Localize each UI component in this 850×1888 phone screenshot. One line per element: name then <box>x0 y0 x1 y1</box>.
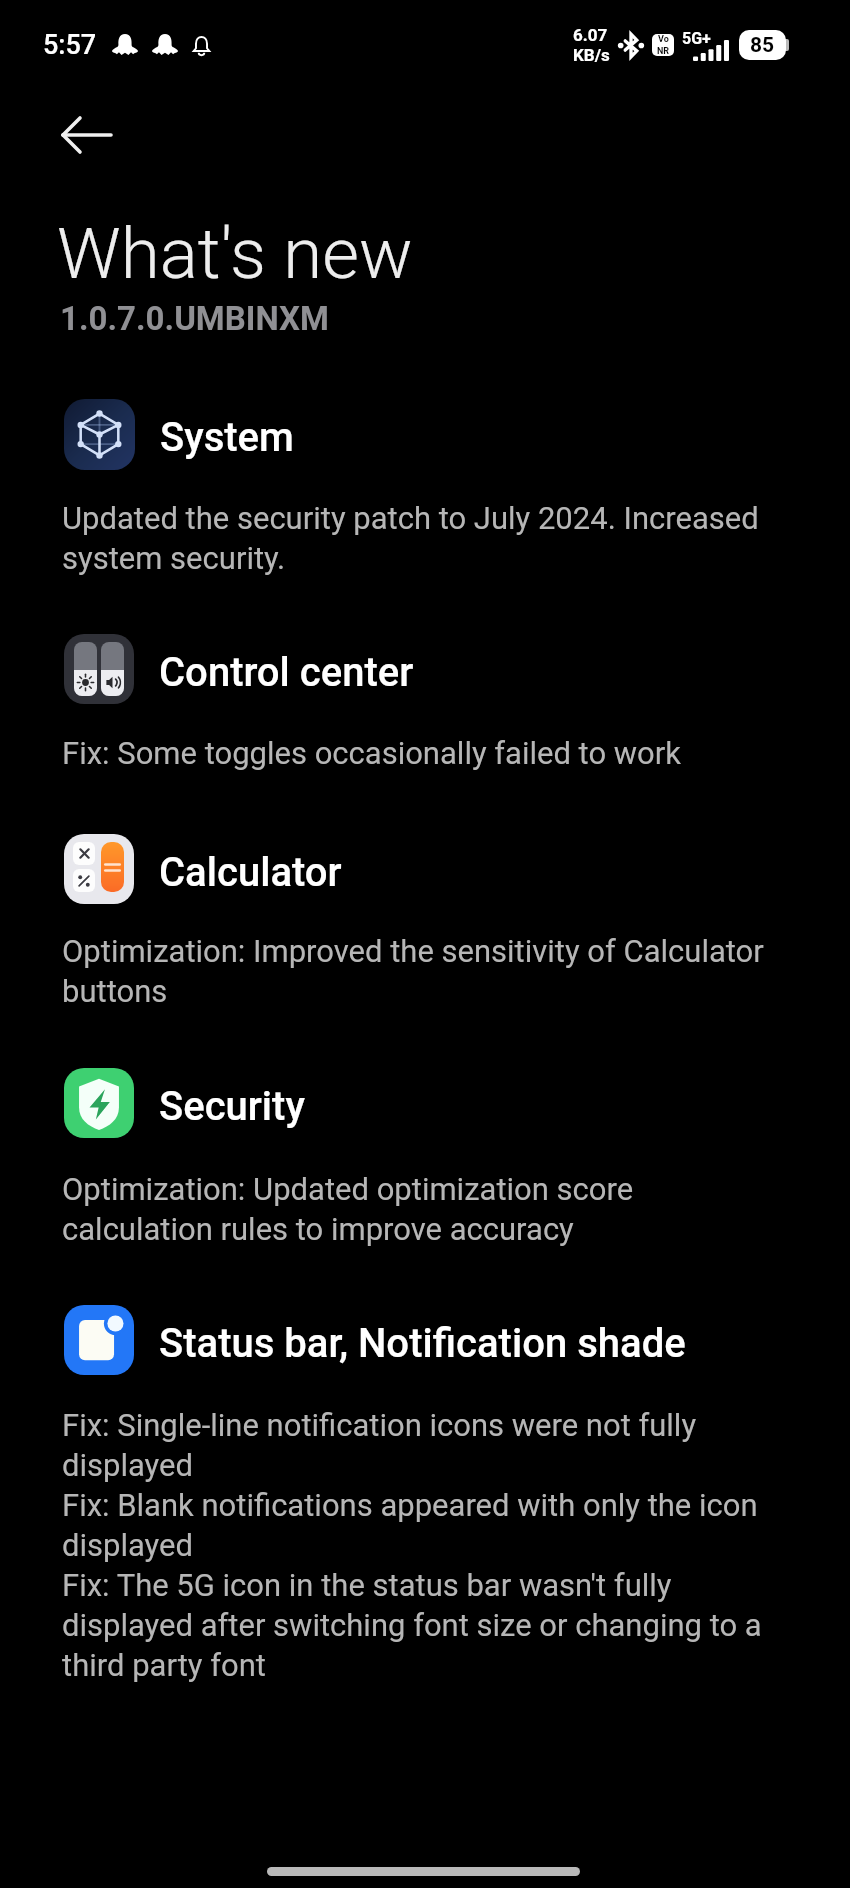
staticText: Status bar, Notification shade <box>159 1320 686 1367</box>
button[interactable]: Calculator <box>0 816 850 1050</box>
staticText: Updated the security patch to July 2024.… <box>62 500 778 576</box>
button[interactable]: Back <box>51 99 123 171</box>
button[interactable]: Status bar, Notification shade <box>0 1287 850 1700</box>
staticText: 1.0.7.0.UMBINXM <box>60 299 329 338</box>
staticText: 6.07 <box>573 25 608 45</box>
staticText: Vo <box>658 34 669 45</box>
staticText: NR <box>657 46 670 56</box>
staticText: Fix: Single-line notification icons were… <box>62 1407 778 1683</box>
button[interactable]: Security <box>0 1050 850 1287</box>
staticText: 5G+ <box>682 29 711 48</box>
staticText: Control center <box>159 649 414 696</box>
staticText: System <box>160 414 294 461</box>
staticText: Optimization: Improved the sensitivity o… <box>62 933 778 1009</box>
staticText: KB/s <box>573 45 610 65</box>
staticText: Security <box>159 1083 305 1130</box>
staticText: 5:57 <box>43 29 97 61</box>
staticText: 85 <box>750 33 775 58</box>
button[interactable]: System <box>0 381 850 616</box>
staticText: Optimization: Updated optimization score… <box>62 1171 778 1247</box>
staticText: What's new <box>57 212 413 295</box>
staticText: Calculator <box>159 849 342 896</box>
button[interactable]: Control center <box>0 616 850 816</box>
staticText: Fix: Some toggles occasionally failed to… <box>62 735 778 771</box>
